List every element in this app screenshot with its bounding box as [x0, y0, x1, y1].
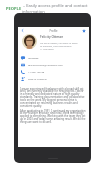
- button[interactable]: Back: [19, 27, 26, 34]
- staticText: We live & design, you want to avoid: [40, 42, 78, 45]
- staticText: After graduating in 1991, I continued my…: [20, 109, 86, 124]
- staticText: +1 555 182 88: [28, 70, 45, 73]
- staticText: – Easily access profile and contact info…: [22, 3, 103, 15]
- button[interactable]: felicityottman@company.com: [18, 61, 89, 68]
- staticText: Felicity Ottman: [40, 35, 64, 39]
- staticText: I am an experienced freelancer with a br…: [20, 87, 86, 108]
- button[interactable]: Save in contacts: [18, 75, 89, 82]
- staticText: PEOPLE: [6, 6, 22, 12]
- button[interactable]: +1 555 182 88: [18, 68, 89, 75]
- button[interactable]: Favourite: [80, 27, 87, 34]
- staticText: +1 555 88891: [40, 48, 55, 51]
- staticText: Message: [28, 56, 39, 59]
- staticText: Profile: [18, 29, 89, 33]
- staticText: felicityottman@company.com: [28, 63, 63, 66]
- staticText: Save in contacts: [28, 77, 47, 80]
- button[interactable]: Message: [18, 54, 89, 61]
- staticText: to maintain, they intentionally: [40, 45, 72, 48]
